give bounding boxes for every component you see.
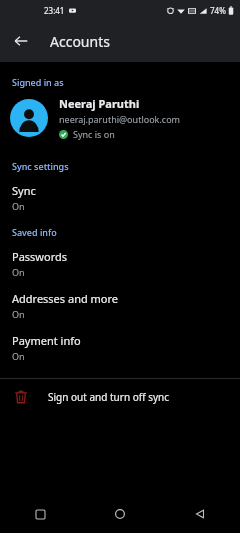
staticText: Sync is on	[73, 128, 115, 140]
other: Sign out and turn off sync	[12, 388, 30, 406]
button[interactable]: Passwords	[0, 247, 240, 280]
staticText: Passwords	[12, 249, 68, 264]
button[interactable]: Home	[105, 499, 135, 529]
button[interactable]: Addresses and more	[0, 289, 240, 322]
button[interactable]: Recents	[25, 499, 55, 529]
staticText: 74%	[210, 5, 226, 16]
staticText: Neeraj Paruthi	[59, 96, 140, 111]
staticText: On	[12, 308, 25, 320]
button[interactable]: Payment info	[0, 331, 240, 364]
staticText: On	[12, 350, 25, 362]
button[interactable]: Neeraj Paruthi	[0, 88, 240, 148]
staticText: Sync settings	[12, 160, 69, 172]
staticText: On	[12, 200, 25, 212]
button[interactable]: Sign out and turn off sync	[0, 379, 240, 415]
staticText: Accounts	[50, 32, 110, 51]
button[interactable]: Back	[185, 499, 215, 529]
staticText: Payment info	[12, 333, 81, 348]
staticText: Signed in as	[12, 76, 64, 88]
staticText: Addresses and more	[12, 291, 119, 306]
staticText: neeraj.paruthi@outlook.com	[59, 113, 180, 125]
staticText: Sync	[12, 183, 36, 198]
staticText: On	[12, 266, 25, 278]
button[interactable]: Back	[8, 28, 34, 54]
staticText: 23:41	[44, 5, 65, 16]
staticText: Sign out and turn off sync	[48, 390, 170, 404]
staticText: Saved info	[12, 226, 57, 238]
button[interactable]: Sync	[0, 181, 240, 214]
